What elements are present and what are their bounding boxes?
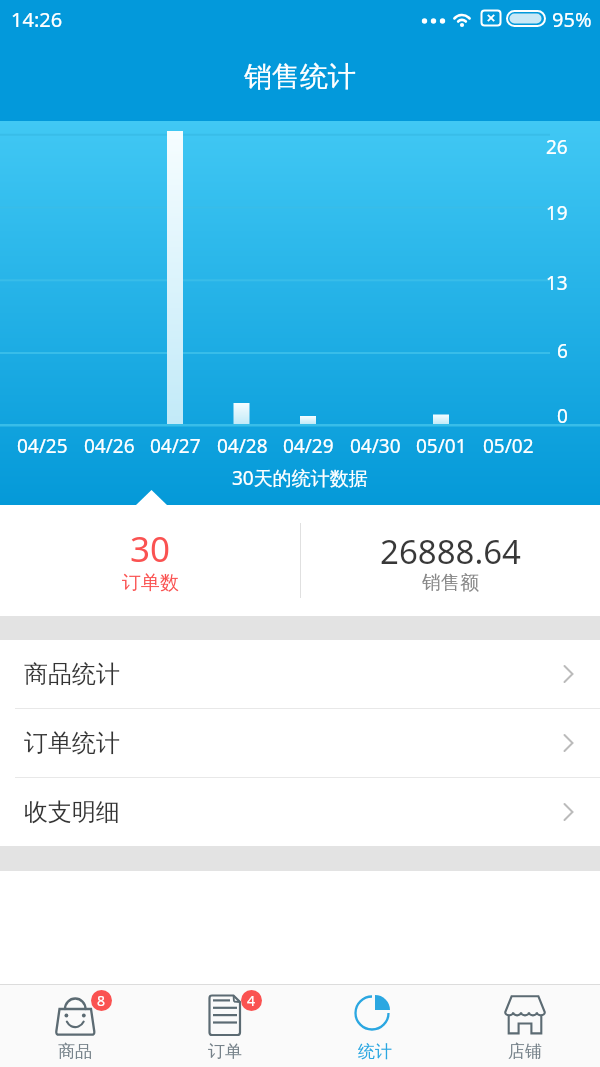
staticText: 销售统计 — [244, 59, 356, 94]
staticText: 04/27 — [150, 433, 201, 457]
staticText: 0 — [557, 403, 568, 427]
staticText: 订单数 — [122, 571, 179, 595]
staticText: 订单统计 — [24, 728, 120, 758]
staticText: 统计 — [358, 1041, 392, 1062]
button[interactable]: 收支明细 — [0, 778, 600, 846]
staticText: 8 — [97, 991, 106, 1010]
button[interactable]: 统计 — [300, 985, 450, 1067]
staticText: 26888.64 — [380, 529, 521, 567]
button[interactable]: 8 — [0, 985, 150, 1067]
staticText: 30 — [130, 525, 171, 565]
staticText: 6 — [557, 338, 568, 362]
staticText: 收支明细 — [24, 797, 120, 827]
button[interactable]: 商品统计 — [0, 640, 600, 708]
staticText: 30天的统计数据 — [232, 465, 368, 489]
staticText: 95% — [552, 6, 592, 30]
button[interactable]: 26888.64 — [300, 529, 600, 567]
button[interactable]: 店铺 — [450, 985, 600, 1067]
staticText: 销售额 — [422, 571, 479, 595]
staticText: 04/29 — [283, 433, 334, 457]
button[interactable]: 30 — [0, 525, 300, 565]
staticText: 4 — [247, 991, 256, 1010]
staticText: 04/28 — [217, 433, 268, 457]
staticText: 26 — [546, 134, 568, 158]
staticText: 19 — [546, 200, 568, 224]
staticText: 店铺 — [508, 1041, 542, 1062]
staticText: 04/25 — [17, 433, 68, 457]
staticText: 商品 — [58, 1041, 92, 1062]
staticText: 05/02 — [483, 433, 534, 457]
staticText: 04/26 — [84, 433, 135, 457]
button[interactable]: 4 — [150, 985, 300, 1067]
staticText: 商品统计 — [24, 659, 120, 689]
staticText: 05/01 — [416, 433, 467, 457]
staticText: 13 — [546, 270, 568, 294]
staticText: 14:26 — [11, 6, 63, 30]
staticText: 04/30 — [350, 433, 401, 457]
staticText: 订单 — [208, 1041, 242, 1062]
button[interactable]: 订单统计 — [0, 709, 600, 777]
